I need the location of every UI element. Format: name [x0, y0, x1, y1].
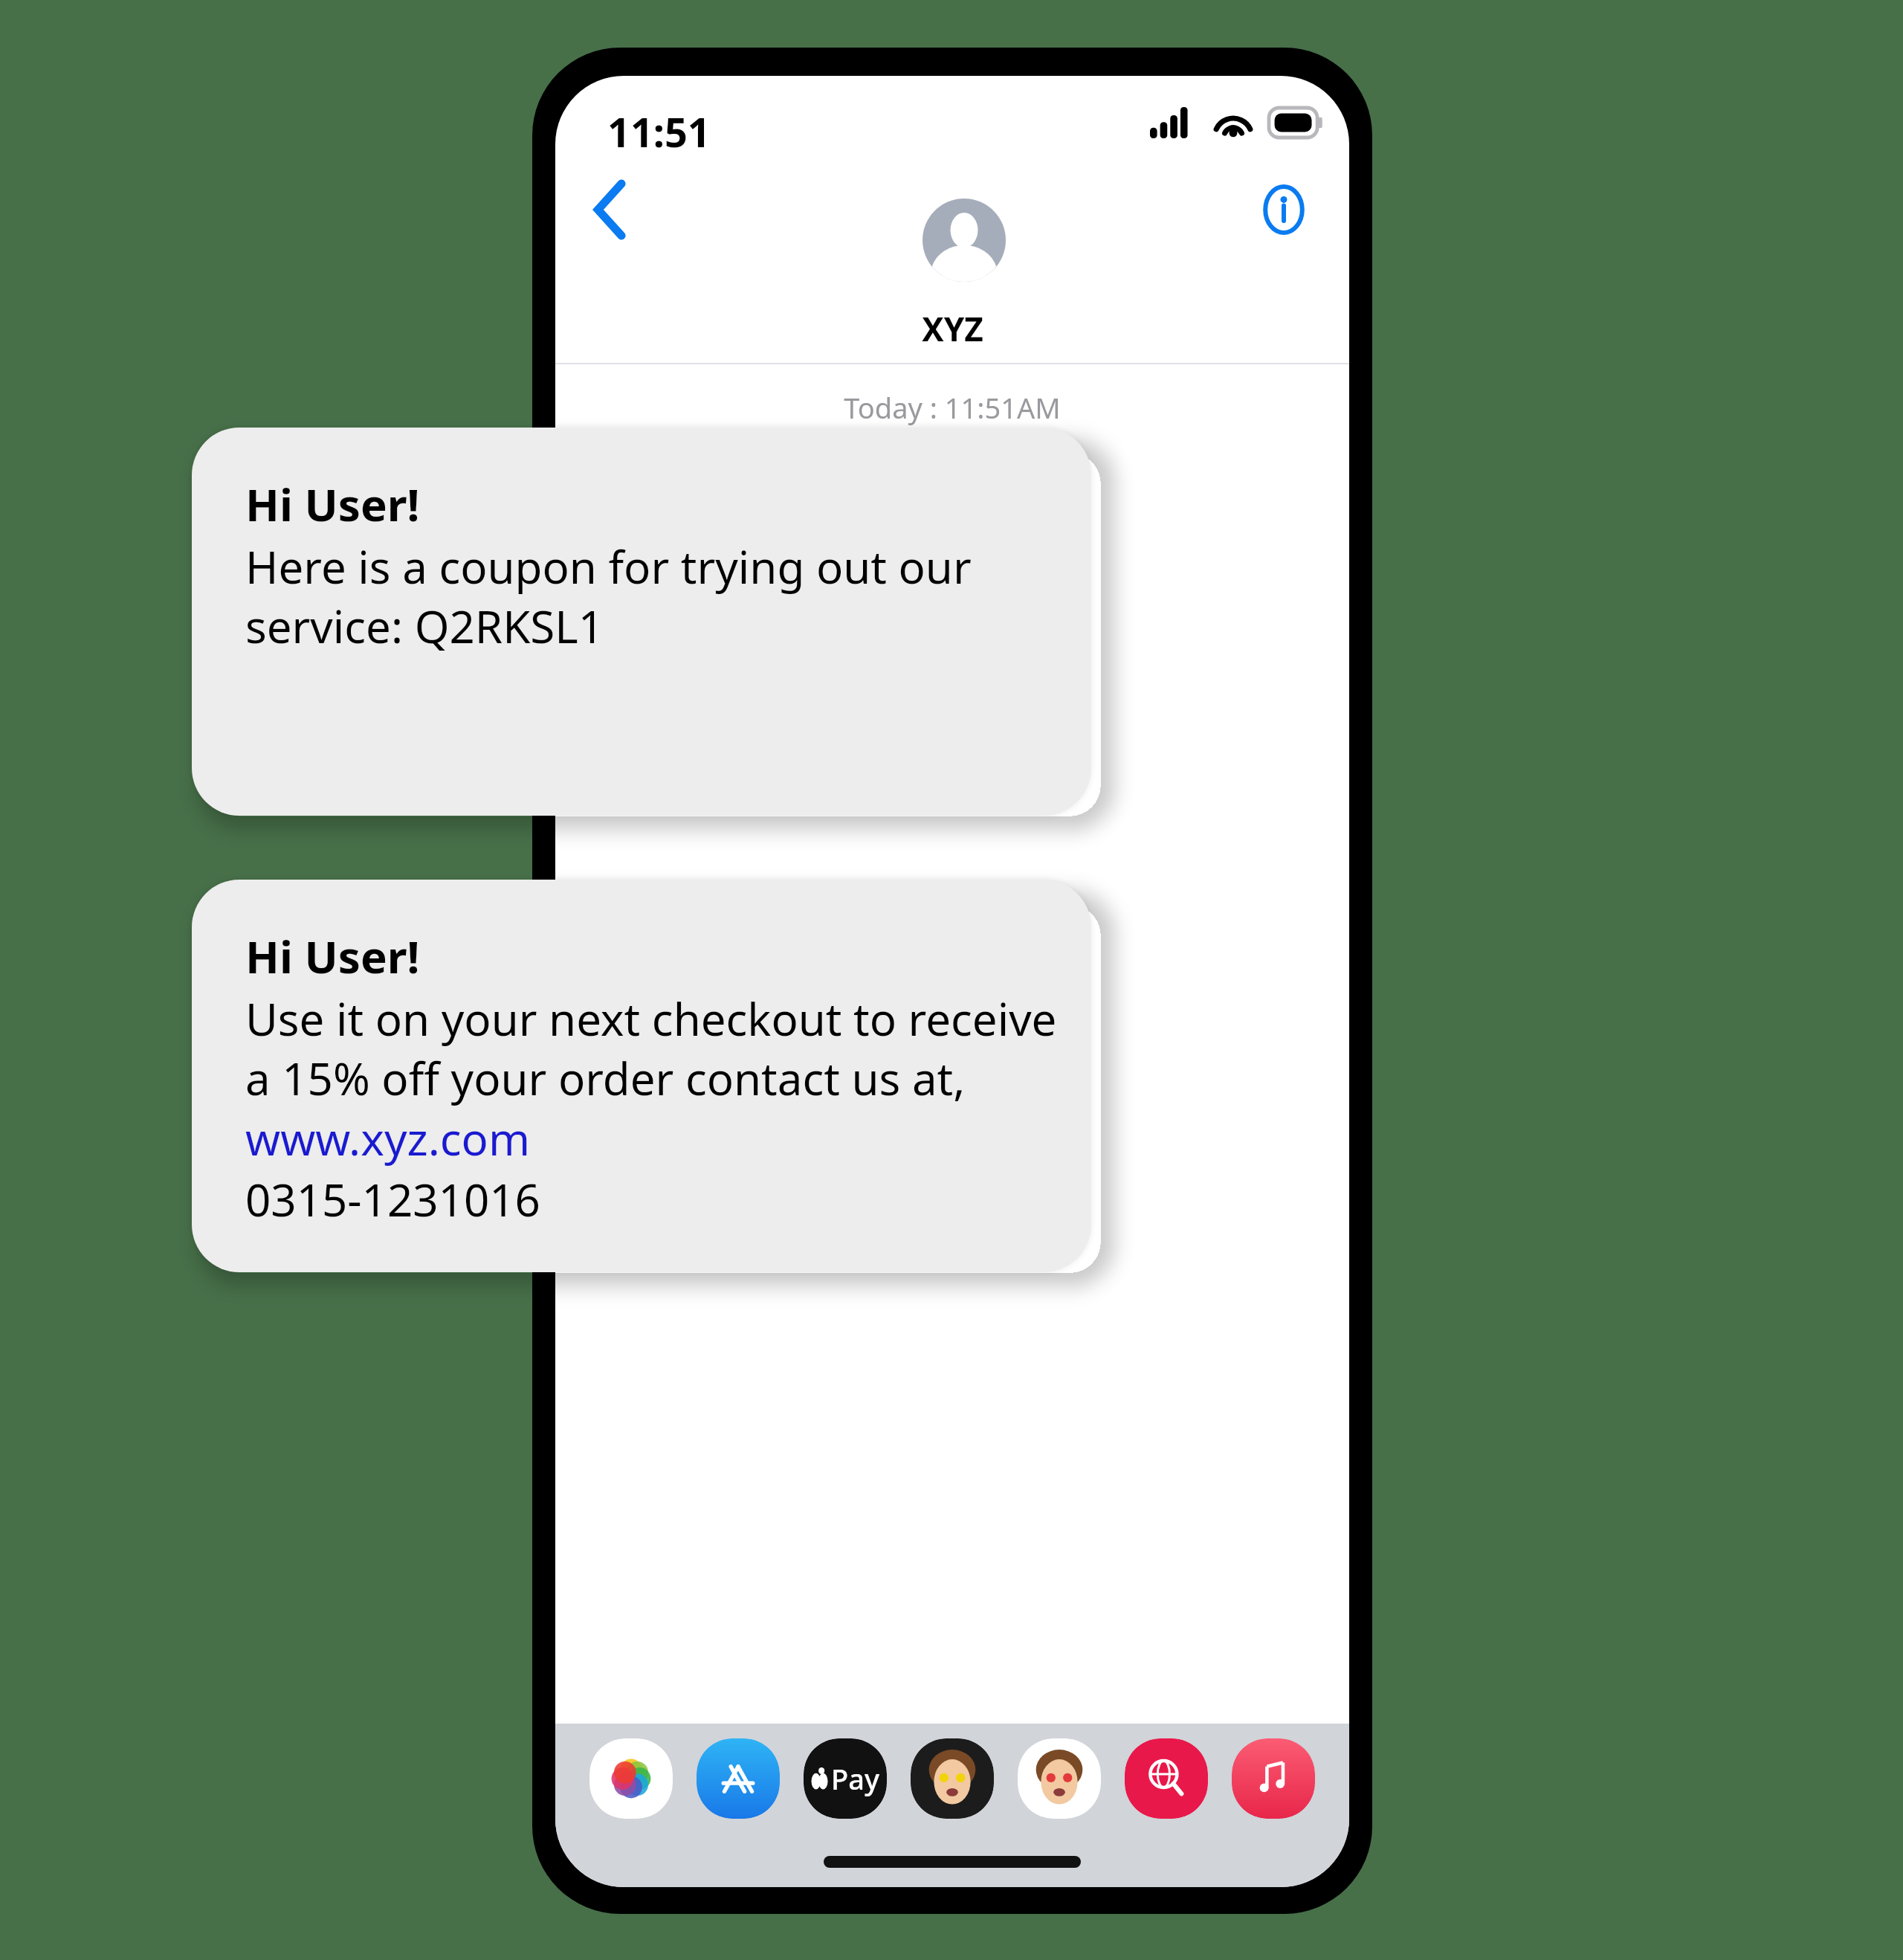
staticText: Hi User!: [245, 926, 420, 987]
button[interactable]: Music: [1232, 1738, 1315, 1819]
button[interactable]: Hi User!: [192, 428, 1091, 816]
button[interactable]: Memoji: [911, 1738, 994, 1819]
button[interactable]: www.xyz.com: [245, 1108, 530, 1169]
staticText: Hi User!: [245, 474, 420, 535]
staticText: 11:51: [607, 104, 711, 159]
staticText: Today : 11:51AM: [844, 388, 1061, 427]
staticText: XYZ: [922, 306, 983, 351]
staticText: 0315-1231016: [245, 1169, 540, 1230]
button[interactable]: Contact photo: [923, 199, 1006, 282]
button[interactable]: Hi User!: [192, 880, 1091, 1272]
button[interactable]: Details: [1247, 169, 1321, 251]
staticText: www.xyz.com: [245, 1108, 530, 1169]
button[interactable]: Photos: [589, 1738, 673, 1819]
button[interactable]: Image search: [1125, 1738, 1208, 1819]
button[interactable]: Memoji stickers: [1018, 1738, 1101, 1819]
button[interactable]: App Store: [697, 1738, 780, 1819]
button[interactable]: Apple Pay: [804, 1738, 887, 1819]
staticText: Pay: [831, 1759, 879, 1798]
staticText: Here is a coupon for trying out our serv…: [245, 536, 972, 656]
button[interactable]: Back: [578, 169, 644, 251]
staticText: Use it on your next checkout to receive …: [245, 988, 1057, 1108]
